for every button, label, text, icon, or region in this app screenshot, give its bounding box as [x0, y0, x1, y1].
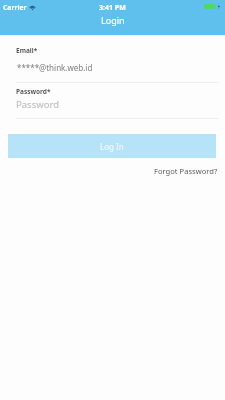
staticText: Login: [101, 14, 125, 26]
staticText: Log In: [100, 141, 124, 152]
staticText: Email*: [16, 46, 38, 55]
staticText: 3:41 PM: [99, 3, 126, 13]
button[interactable]: Email*: [0, 42, 225, 83]
staticText: Password*: [16, 87, 51, 96]
staticText: Carrier: [3, 3, 27, 12]
staticText: Forgot Password?: [154, 166, 218, 176]
button[interactable]: Forgot Password?: [154, 166, 218, 176]
other: Battery charging: [204, 3, 223, 10]
staticText: *****@think.web.id: [17, 62, 93, 73]
other: Wi-Fi: [29, 4, 36, 11]
button[interactable]: Password*: [0, 83, 225, 119]
staticText: Password: [16, 98, 59, 111]
button[interactable]: Log In: [8, 134, 216, 158]
